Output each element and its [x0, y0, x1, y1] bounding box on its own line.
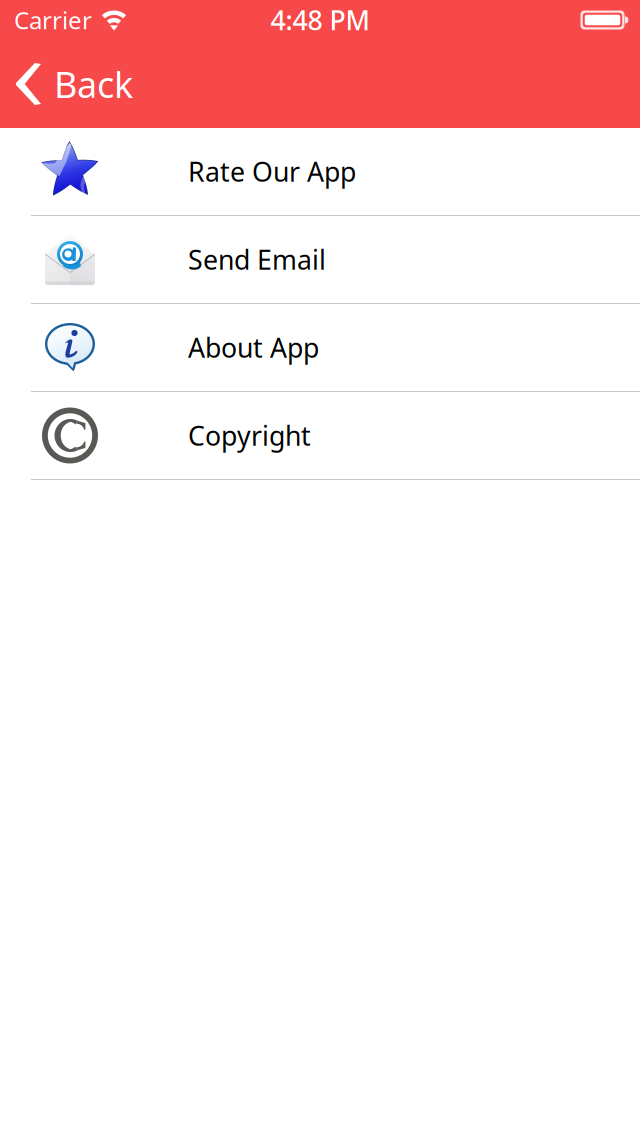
- staticText: Copyright: [188, 418, 311, 453]
- button[interactable]: Copyright: [0, 392, 640, 480]
- staticText: Back: [54, 60, 133, 108]
- staticText: Carrier: [14, 4, 92, 36]
- staticText: About App: [188, 330, 319, 365]
- staticText: Send Email: [188, 242, 326, 277]
- button[interactable]: About App: [0, 304, 640, 392]
- staticText: 4:48 PM: [270, 2, 369, 38]
- button[interactable]: Back: [0, 40, 149, 128]
- button[interactable]: Send Email: [0, 216, 640, 304]
- button[interactable]: Rate Our App: [0, 128, 640, 216]
- staticText: Rate Our App: [188, 154, 356, 189]
